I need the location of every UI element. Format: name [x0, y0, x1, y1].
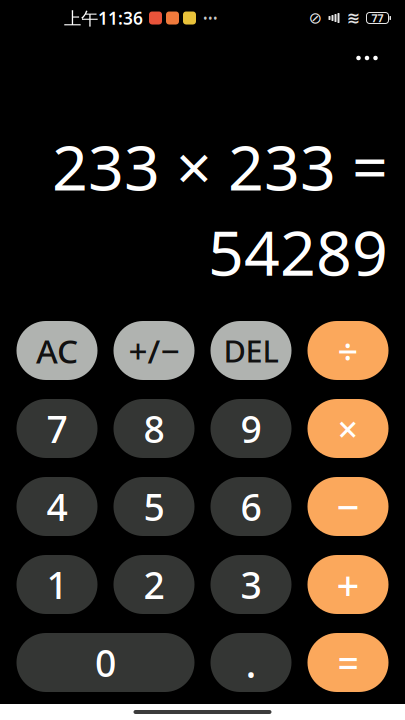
button[interactable]: 5 [113, 477, 194, 536]
button[interactable]: More options [345, 36, 389, 80]
staticText: 233 × 233 = [52, 125, 388, 208]
staticText: 7 [46, 404, 67, 453]
button[interactable]: 7 [16, 399, 97, 458]
button[interactable]: 1 [16, 555, 97, 614]
staticText: 4 [46, 482, 67, 531]
staticText: 上午11:36 [64, 6, 143, 29]
button[interactable]: = [307, 633, 388, 692]
button[interactable]: 2 [113, 555, 194, 614]
staticText: 6 [240, 482, 261, 531]
staticText: ••• [203, 10, 218, 26]
staticText: ≋ [346, 9, 359, 27]
staticText: . [245, 636, 256, 689]
staticText: +/− [128, 328, 179, 373]
staticText: 0 [95, 638, 116, 687]
staticText: 8 [143, 404, 164, 453]
staticText: + [336, 558, 359, 611]
staticText: ÷ [337, 327, 358, 374]
button[interactable]: +/− [113, 321, 194, 380]
staticText: AC [36, 328, 78, 373]
button[interactable]: 0 [16, 633, 194, 692]
staticText: − [336, 480, 359, 533]
button[interactable]: + [307, 555, 388, 614]
button[interactable]: − [307, 477, 388, 536]
staticText: 3 [240, 560, 261, 609]
staticText: 77 [371, 11, 383, 25]
staticText: = [337, 638, 358, 687]
staticText: DEL [223, 330, 278, 371]
staticText: 9 [240, 404, 261, 453]
staticText: 54289 [208, 210, 388, 293]
staticText: 5 [143, 482, 164, 531]
staticText: ⊘ [308, 9, 321, 27]
button[interactable]: × [307, 399, 388, 458]
button[interactable]: 3 [210, 555, 291, 614]
staticText: × [337, 405, 358, 452]
button[interactable]: AC [16, 321, 97, 380]
button[interactable]: 8 [113, 399, 194, 458]
button[interactable]: DEL [210, 321, 291, 380]
button[interactable]: . [210, 633, 291, 692]
button[interactable]: 6 [210, 477, 291, 536]
button[interactable]: ÷ [307, 321, 388, 380]
staticText: 1 [46, 560, 67, 609]
button[interactable]: 9 [210, 399, 291, 458]
staticText: 2 [143, 560, 164, 609]
button[interactable]: 4 [16, 477, 97, 536]
